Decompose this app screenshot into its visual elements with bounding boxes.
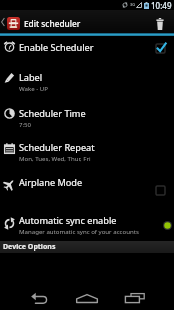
staticText: 7:50	[19, 120, 32, 128]
button[interactable]: Home	[65, 288, 109, 310]
button[interactable]: Automatic sync enable	[0, 204, 174, 239]
button[interactable]: Delete	[149, 11, 171, 33]
staticText: 10:49	[151, 0, 172, 10]
staticText: 3G	[130, 2, 136, 7]
staticText: Scheduler Repeat	[19, 141, 95, 154]
button[interactable]: Scheduler Time	[0, 99, 174, 134]
button[interactable]: Back	[17, 288, 61, 310]
button[interactable]: Recent apps	[113, 288, 157, 310]
staticText: Wake - UP	[19, 84, 48, 92]
staticText: Enable Scheduler	[19, 41, 94, 54]
button[interactable]: Label	[0, 64, 174, 99]
staticText: Edit scheduler	[24, 18, 81, 29]
staticText: Mon, Tues, Wed, Thur, Fri	[19, 154, 91, 162]
staticText: Airplane Mode	[19, 176, 83, 189]
button[interactable]: Edit scheduler	[0, 15, 149, 28]
staticText: Label	[19, 71, 43, 84]
button[interactable]: Device Options	[0, 241, 174, 253]
staticText: Automatic sync enable	[19, 214, 117, 227]
staticText: Manager automatic sync of your accounts	[19, 227, 139, 235]
staticText: Scheduler Time	[19, 107, 86, 120]
staticText: Device Options	[3, 242, 56, 252]
button[interactable]: Enable Scheduler	[0, 36, 174, 64]
button[interactable]: Airplane Mode	[0, 169, 174, 204]
button[interactable]: Scheduler Repeat	[0, 134, 174, 169]
